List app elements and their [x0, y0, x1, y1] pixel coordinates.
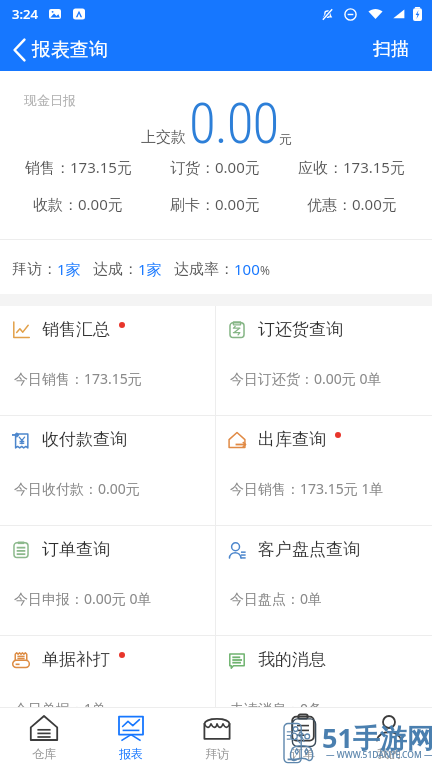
staticText: 1家 — [138, 259, 162, 279]
staticText: 优惠：0.00元 — [307, 194, 397, 214]
staticText: 今日单据：1单 — [14, 699, 107, 707]
staticText: 今日收付款：0.00元 — [14, 479, 140, 498]
staticText: 达成率： — [174, 260, 234, 279]
button[interactable]: 报表 — [87, 708, 174, 768]
staticText: 订单查询 — [42, 539, 110, 560]
staticText: 1家 — [57, 259, 81, 279]
staticText: 销售：173.15元 — [25, 157, 132, 177]
staticText: 报表查询 — [32, 38, 108, 62]
button[interactable]: 订还货查询 — [216, 306, 432, 415]
staticText: 报表 — [119, 746, 143, 761]
staticText: 订货：0.00元 — [170, 157, 260, 177]
button[interactable]: 单据补打 — [0, 636, 215, 707]
staticText: 今日订还货：0.00元 0单 — [230, 369, 382, 388]
staticText: 51手游网 — [322, 719, 432, 756]
staticText: 销售汇总 — [42, 319, 110, 340]
button[interactable]: 扫描 — [371, 33, 411, 66]
staticText: 拜访 — [205, 746, 229, 761]
staticText: 元 — [279, 131, 292, 147]
staticText: 0.00 — [189, 92, 279, 156]
staticText: 扫描 — [373, 38, 409, 61]
staticText: 100 — [234, 259, 260, 279]
button[interactable]: 销售汇总 — [0, 306, 215, 415]
staticText: 今日销售：173.15元 — [14, 369, 142, 388]
button[interactable]: 出库查询 — [216, 416, 432, 525]
staticText: % — [260, 262, 270, 278]
button[interactable]: 我的消息 — [216, 636, 432, 707]
staticText: 今日销售：173.15元 1单 — [230, 479, 384, 498]
staticText: 现金日报 — [24, 92, 76, 108]
staticText: 出库查询 — [258, 429, 326, 450]
button[interactable]: 我的 — [346, 708, 432, 768]
staticText: 仓库 — [32, 746, 56, 761]
button[interactable]: Back — [6, 33, 32, 67]
staticText: 收付款查询 — [42, 429, 127, 450]
button[interactable]: 拜访 — [174, 708, 260, 768]
button[interactable]: 仓库 — [0, 708, 87, 768]
staticText: 我的消息 — [258, 649, 326, 670]
staticText: 单据补打 — [42, 649, 110, 670]
staticText: 刷卡：0.00元 — [170, 194, 260, 214]
staticText: 上交款 — [141, 128, 186, 147]
button[interactable]: 订单 — [260, 708, 346, 768]
staticText: 拜访： — [12, 260, 57, 279]
staticText: 3:24 — [12, 5, 38, 23]
staticText: 今日盘点：0单 — [230, 589, 323, 608]
staticText: 订单 — [291, 746, 315, 761]
staticText: 达成： — [93, 260, 138, 279]
staticText: 我的 — [377, 746, 401, 761]
button[interactable]: 订单查询 — [0, 526, 215, 635]
button[interactable]: 客户盘点查询 — [216, 526, 432, 635]
staticText: — WWW.51DANYE.COM — — [326, 749, 432, 761]
staticText: 应收：173.15元 — [298, 157, 405, 177]
staticText: 订还货查询 — [258, 319, 343, 340]
staticText: 客户盘点查询 — [258, 539, 360, 560]
staticText: 收款：0.00元 — [33, 194, 123, 214]
staticText: 未读消息：0条 — [230, 699, 323, 707]
button[interactable]: 收付款查询 — [0, 416, 215, 525]
staticText: 今日申报：0.00元 0单 — [14, 589, 152, 608]
